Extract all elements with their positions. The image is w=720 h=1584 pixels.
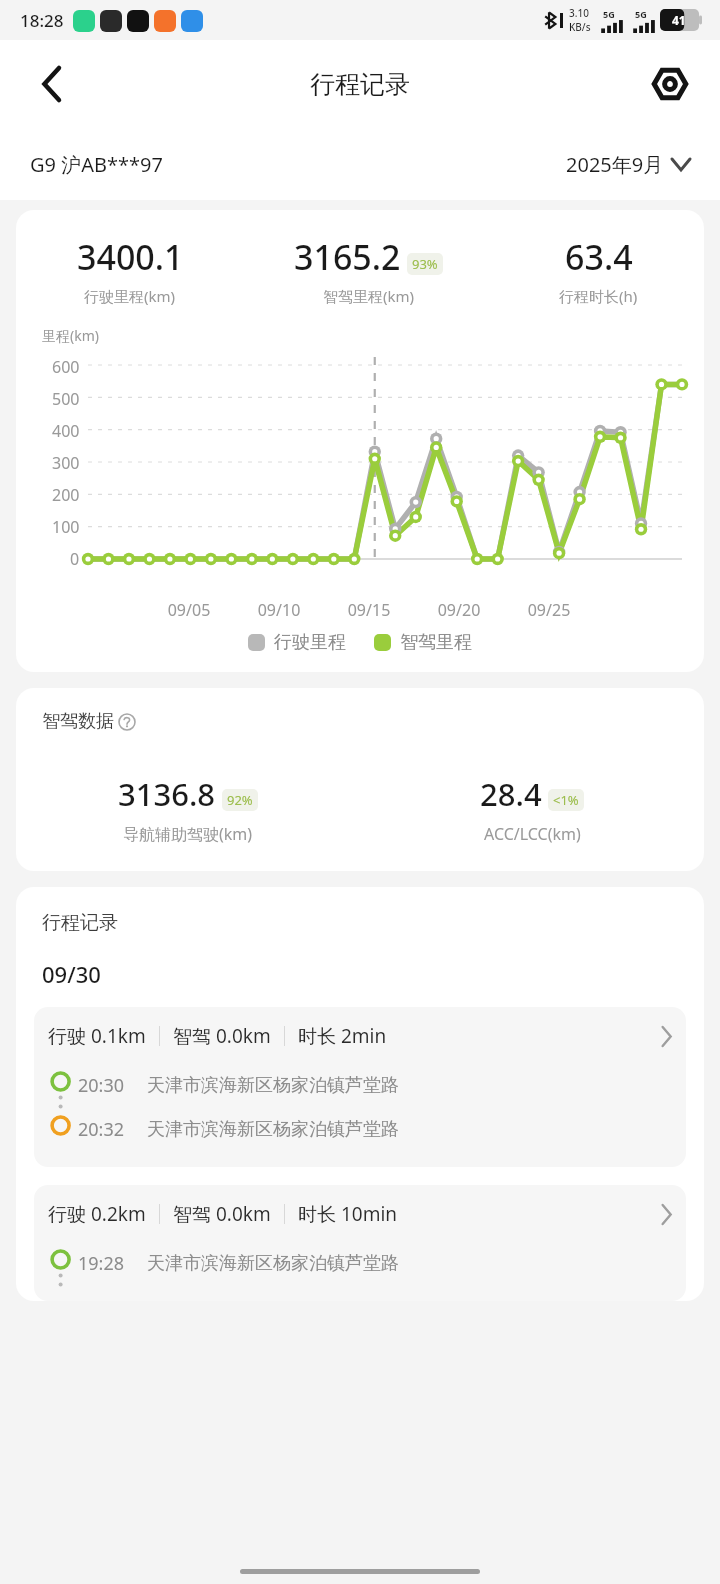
staticText: 智驾里程(km) — [323, 286, 415, 306]
staticText: 300 — [52, 452, 80, 474]
staticText: 智驾数据 — [42, 710, 114, 733]
staticText: 28.4 — [480, 773, 542, 815]
button[interactable]: G9 沪AB***97 — [30, 151, 566, 178]
staticText: 导航辅助驾驶(km) — [123, 823, 253, 845]
staticText: 3136.8 — [118, 773, 216, 815]
staticText: 19:28 — [78, 1251, 125, 1276]
staticText: 行驶 0.1km — [48, 1023, 146, 1049]
staticText: 时长 10min — [298, 1201, 398, 1227]
staticText: <1% — [553, 791, 579, 809]
staticText: 行驶里程(km) — [84, 286, 176, 306]
staticText: 天津市滨海新区杨家泊镇芦堂路 — [147, 1118, 399, 1141]
button[interactable]: 智驾数据 — [42, 710, 136, 733]
button[interactable]: 2025年9月 — [566, 151, 690, 178]
staticText: 09/10 — [234, 599, 324, 621]
staticText: 93% — [412, 255, 438, 273]
staticText: 智驾里程 — [400, 631, 472, 654]
staticText: 智驾 0.0km — [173, 1023, 271, 1049]
staticText: 3.10 — [569, 6, 589, 20]
staticText: 92% — [227, 791, 253, 809]
staticText: 09/20 — [414, 599, 504, 621]
staticText: 63.4 — [565, 234, 633, 280]
staticText: KB/s — [569, 20, 591, 34]
staticText: 200 — [52, 484, 80, 506]
button[interactable]: Back — [28, 60, 76, 108]
staticText: 20:32 — [78, 1117, 125, 1142]
staticText: 行驶 0.2km — [48, 1201, 146, 1227]
staticText: 天津市滨海新区杨家泊镇芦堂路 — [147, 1074, 399, 1097]
button[interactable]: 行驶 0.2km — [34, 1185, 686, 1301]
staticText: 41 — [672, 12, 686, 28]
staticText: 0 — [70, 548, 80, 570]
staticText: ACC/LCC(km) — [484, 823, 581, 845]
staticText: 时长 2min — [298, 1023, 387, 1049]
staticText: 里程(km) — [42, 326, 99, 345]
button[interactable]: Settings — [646, 60, 694, 108]
staticText: 5G — [603, 8, 615, 20]
staticText: 天津市滨海新区杨家泊镇芦堂路 — [147, 1252, 399, 1275]
staticText: 行驶里程 — [274, 631, 346, 654]
staticText: 行程记录 — [42, 911, 118, 935]
staticText: 600 — [52, 356, 80, 378]
staticText: 行程记录 — [310, 69, 410, 100]
button[interactable]: 行驶 0.1km — [34, 1007, 686, 1167]
staticText: 3165.2 — [294, 234, 401, 280]
staticText: 2025年9月 — [566, 151, 664, 178]
staticText: 20:30 — [78, 1073, 125, 1098]
staticText: 5G — [635, 8, 647, 20]
staticText: 行程时长(h) — [559, 286, 638, 306]
staticText: 18:28 — [20, 9, 64, 32]
staticText: 09/25 — [504, 599, 594, 621]
staticText: 100 — [52, 516, 80, 538]
staticText: 09/05 — [144, 599, 234, 621]
staticText: 智驾 0.0km — [173, 1201, 271, 1227]
staticText: 500 — [52, 388, 80, 410]
staticText: G9 沪AB***97 — [30, 151, 163, 178]
staticText: 3400.1 — [77, 234, 184, 280]
staticText: 09/30 — [42, 959, 101, 989]
staticText: 400 — [52, 420, 80, 442]
staticText: 09/15 — [324, 599, 414, 621]
